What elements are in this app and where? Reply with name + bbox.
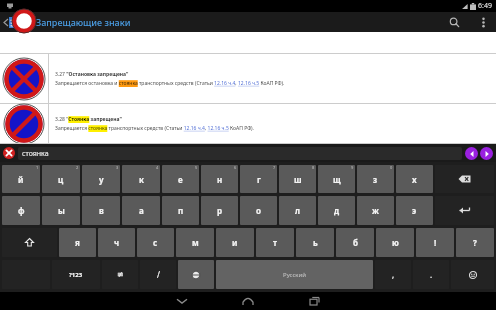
staticText: э: [412, 205, 417, 216]
staticText: ,: [392, 269, 395, 280]
staticText: г: [257, 174, 261, 185]
staticText: а: [139, 205, 144, 216]
button[interactable]: д: [318, 196, 355, 225]
staticText: я: [75, 237, 80, 248]
button[interactable]: Search: [438, 12, 470, 32]
button[interactable]: з: [357, 165, 394, 193]
staticText: н: [217, 174, 223, 185]
staticText: б: [353, 237, 358, 248]
staticText: 6: [234, 165, 237, 170]
button[interactable]: .: [413, 260, 449, 289]
button[interactable]: Recent apps: [303, 292, 325, 310]
staticText: 4: [156, 165, 159, 170]
staticText: ≢: [117, 270, 124, 279]
staticText: Русский: [283, 271, 306, 279]
button[interactable]: More options: [470, 12, 496, 32]
button[interactable]: ы: [42, 196, 80, 225]
button[interactable]: о: [240, 196, 277, 225]
staticText: з: [373, 174, 378, 185]
button[interactable]: Enter: [435, 196, 494, 225]
button[interactable]: р: [201, 196, 238, 225]
button[interactable]: а: [122, 196, 160, 225]
staticText: ц: [58, 174, 64, 185]
staticText: ?123: [69, 271, 83, 279]
button[interactable]: ?: [456, 228, 494, 257]
staticText: т: [273, 237, 278, 248]
button[interactable]: Home: [237, 292, 259, 310]
staticText: 3. Запрещающие знаки: [26, 16, 438, 28]
button[interactable]: Change language: [178, 260, 214, 289]
staticText: Запрещается остановка и стоянка транспор…: [55, 80, 285, 87]
button[interactable]: щ: [318, 165, 355, 193]
button[interactable]: н: [201, 165, 238, 193]
button[interactable]: х: [396, 165, 433, 193]
button[interactable]: ь: [296, 228, 334, 257]
staticText: ы: [58, 205, 65, 216]
button[interactable]: и: [216, 228, 254, 257]
staticText: м: [192, 237, 199, 248]
button[interactable]: ч: [98, 228, 135, 257]
button[interactable]: 3.28 "Стоянка запрещена": [0, 104, 496, 144]
button[interactable]: 3.27 "Остановка запрещена": [0, 54, 496, 104]
staticText: ?: [473, 237, 477, 248]
staticText: 3: [116, 165, 119, 170]
staticText: и: [232, 237, 238, 248]
button[interactable]: стоянка: [18, 147, 462, 160]
button[interactable]: с: [137, 228, 174, 257]
button[interactable]: м: [176, 228, 214, 257]
staticText: ж: [372, 205, 379, 216]
staticText: й: [18, 174, 24, 185]
button[interactable]: Settings: [102, 260, 138, 289]
staticText: ю: [392, 237, 399, 248]
staticText: ч: [114, 237, 120, 248]
button[interactable]: п: [162, 196, 199, 225]
button[interactable]: в: [82, 196, 120, 225]
staticText: о: [256, 205, 261, 216]
button[interactable]: ?123: [52, 260, 100, 289]
staticText: 6:49: [478, 1, 492, 11]
button[interactable]: й: [2, 165, 40, 193]
staticText: ь: [313, 237, 318, 248]
button[interactable]: б: [336, 228, 374, 257]
button[interactable]: Shift: [2, 228, 57, 257]
button[interactable]: Hide keyboard: [171, 292, 193, 310]
staticText: в: [99, 205, 104, 216]
button[interactable]: ,: [375, 260, 411, 289]
staticText: щ: [333, 174, 341, 185]
button[interactable]: !: [416, 228, 454, 257]
button[interactable]: я: [59, 228, 96, 257]
staticText: ш: [294, 174, 302, 185]
button[interactable]: Space: [216, 260, 373, 289]
button[interactable]: ф: [2, 196, 40, 225]
button[interactable]: к: [122, 165, 160, 193]
button[interactable]: т: [256, 228, 294, 257]
button[interactable]: Close search: [0, 144, 18, 162]
button[interactable]: е: [162, 165, 199, 193]
button[interactable]: ц: [42, 165, 80, 193]
button[interactable]: ш: [279, 165, 316, 193]
staticText: 2: [76, 165, 79, 170]
staticText: 0: [390, 165, 393, 170]
button[interactable]: у: [82, 165, 120, 193]
button[interactable]: э: [396, 196, 433, 225]
staticText: ф: [18, 205, 25, 216]
staticText: 8: [312, 165, 315, 170]
staticText: !: [434, 237, 437, 248]
button[interactable]: /: [140, 260, 176, 289]
staticText: Запрещается стоянка транспортных средств…: [55, 125, 254, 132]
button[interactable]: Previous result: [465, 147, 478, 160]
button[interactable]: Backspace: [435, 165, 494, 193]
button[interactable]: Emoji: [451, 260, 494, 289]
staticText: п: [178, 205, 184, 216]
staticText: 7: [273, 165, 276, 170]
button[interactable]: ж: [357, 196, 394, 225]
button[interactable]: л: [279, 196, 316, 225]
staticText: у: [99, 174, 104, 185]
staticText: 3.27 "Остановка запрещена": [55, 71, 129, 78]
staticText: 3.28 "Стоянка запрещена": [55, 116, 122, 123]
button[interactable]: Up: [0, 12, 26, 32]
button[interactable]: Next result: [480, 147, 493, 160]
button[interactable]: ю: [376, 228, 414, 257]
button[interactable]: г: [240, 165, 277, 193]
